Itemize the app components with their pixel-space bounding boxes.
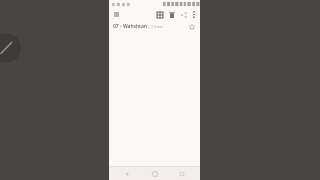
button[interactable]: Grid view — [155, 10, 164, 19]
button[interactable]: Back — [118, 167, 136, 180]
button[interactable]: Share — [179, 10, 188, 19]
staticText: 1 item — [151, 24, 163, 29]
button[interactable]: Delete — [167, 10, 176, 19]
button[interactable]: Favourite — [187, 22, 196, 31]
button[interactable]: Recents — [173, 167, 191, 180]
button[interactable]: More options — [190, 10, 197, 19]
button[interactable]: Navigate up — [112, 10, 121, 19]
button[interactable]: Home — [146, 167, 164, 180]
button[interactable]: Screenshot preview — [0, 33, 21, 63]
button[interactable]: 07 - Wahshtan — [109, 20, 200, 33]
staticText: 07 - Wahshtan — [113, 23, 148, 30]
